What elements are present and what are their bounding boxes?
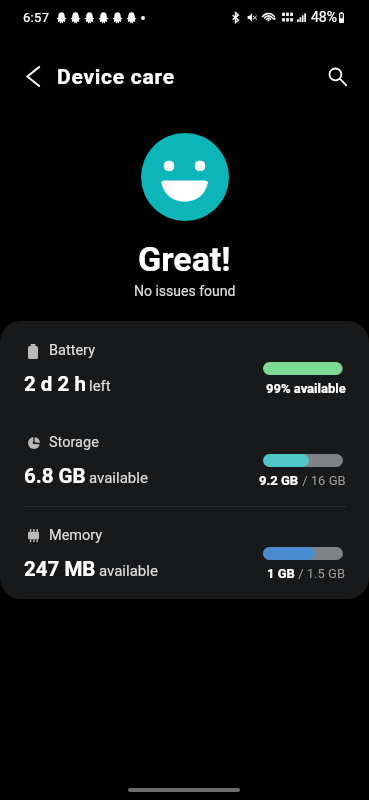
button[interactable]: Memory (0, 506, 369, 599)
staticText: 6:57 (23, 10, 50, 25)
button[interactable]: Battery (0, 321, 369, 414)
staticText: available (89, 469, 148, 487)
staticText: Battery (49, 342, 95, 359)
button[interactable]: Search (318, 57, 356, 95)
staticText: Great! (138, 239, 231, 279)
staticText: 247 MB (24, 557, 96, 581)
staticText: No issues found (134, 283, 236, 299)
staticText: / 16 GB (299, 473, 346, 488)
staticText: available (99, 562, 158, 580)
staticText: 9.2 GB (259, 473, 299, 488)
button[interactable]: Storage (0, 413, 369, 506)
staticText: Device care (57, 65, 175, 90)
staticText: left (89, 377, 111, 395)
staticText: 48% (311, 9, 337, 25)
staticText: Memory (49, 527, 103, 544)
staticText: 99% available (266, 381, 346, 396)
button[interactable]: Navigate up (14, 57, 52, 95)
staticText: 6.8 GB (24, 464, 86, 488)
staticText: 2 d 2 h (24, 372, 86, 396)
staticText: Storage (49, 434, 99, 451)
staticText: 1 GB (267, 566, 295, 581)
staticText: / 1.5 GB (295, 566, 346, 581)
